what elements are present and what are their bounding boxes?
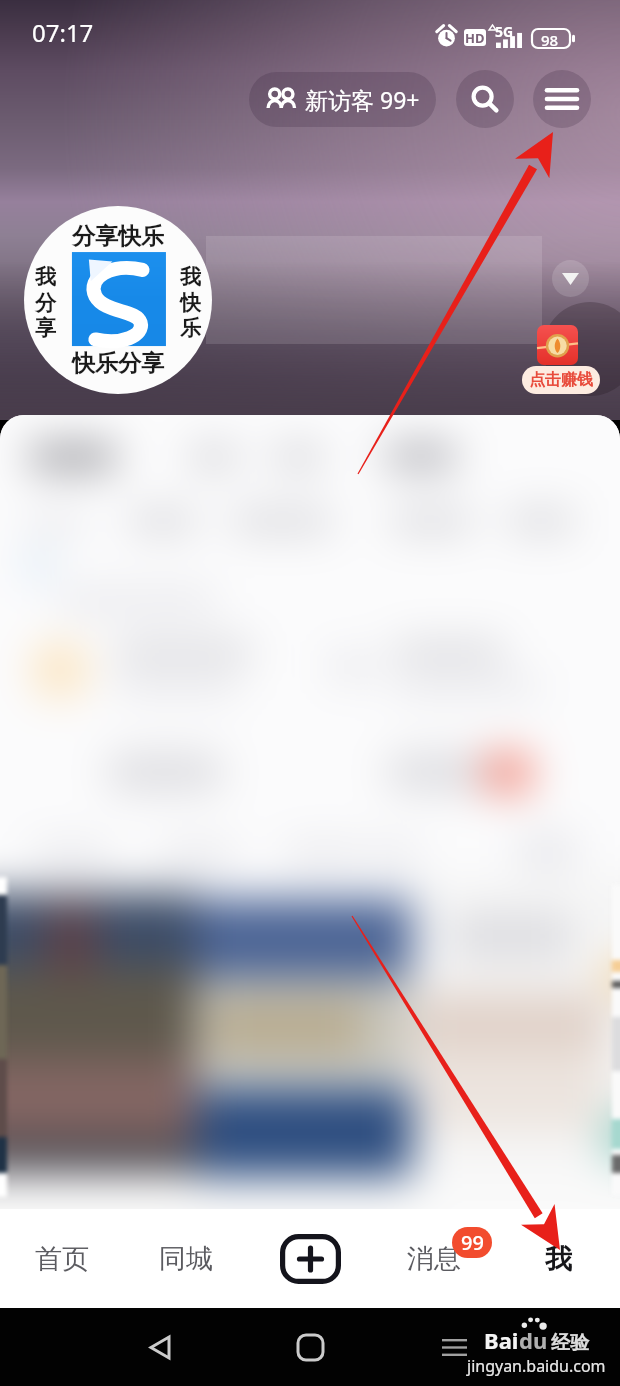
staticText: 首页: [35, 1242, 89, 1276]
staticText: Bai: [484, 1325, 519, 1355]
staticText: 98: [541, 30, 559, 49]
staticText: 经验: [551, 1331, 589, 1355]
button[interactable]: Profile avatar: [24, 206, 212, 394]
button[interactable]: Search: [456, 70, 514, 128]
staticText: HD: [465, 29, 485, 46]
staticText: 99: [461, 1229, 484, 1256]
button[interactable]: Home: [284, 1321, 336, 1373]
button[interactable]: Post: [280, 1234, 341, 1284]
button[interactable]: Expand: [552, 260, 589, 297]
button[interactable]: 同城: [124, 1209, 248, 1308]
button[interactable]: 消息: [372, 1209, 496, 1308]
staticText: 07:17: [32, 16, 94, 49]
staticText: 新访客 99+: [305, 84, 420, 115]
staticText: 5G: [495, 22, 514, 41]
staticText: 我: [545, 1242, 572, 1276]
staticText: 我 快 乐: [180, 264, 201, 341]
button[interactable]: Recents: [432, 1325, 476, 1369]
button[interactable]: 我: [496, 1209, 620, 1308]
staticText: 同城: [159, 1242, 213, 1276]
staticText: 分享快乐: [72, 222, 164, 251]
staticText: du: [519, 1325, 548, 1355]
staticText: 快乐分享: [72, 349, 164, 378]
staticText: 消息: [407, 1242, 461, 1276]
button[interactable]: Menu: [533, 70, 591, 128]
button[interactable]: 新访客 99+: [249, 72, 436, 127]
button[interactable]: Earn money: [500, 301, 620, 401]
button[interactable]: 首页: [0, 1209, 124, 1308]
staticText: jingyan.baidu.com: [467, 1355, 606, 1377]
staticText: 点击赚钱: [529, 370, 593, 390]
button[interactable]: Back: [134, 1321, 186, 1373]
staticText: 我 分 享: [35, 264, 56, 341]
